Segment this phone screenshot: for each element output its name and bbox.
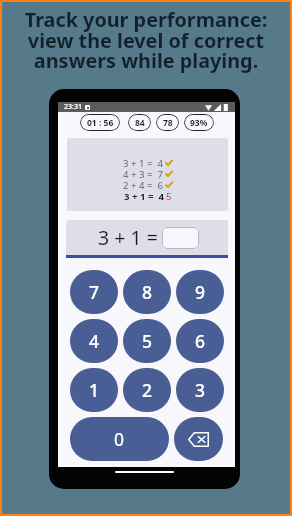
staticText: 3 + 1 = 4 [124,190,164,201]
button[interactable]: 3 + 1 = [66,220,228,255]
button[interactable]: 84 [128,114,151,131]
staticText: 78 [163,117,173,129]
staticText: 3 + 1 = [98,224,158,251]
staticText: 6 [195,329,206,353]
staticText: 0 [114,427,125,451]
button[interactable]: 9 [176,270,224,314]
staticText: 2 [142,378,153,402]
staticText: 01 : 56 [87,117,114,129]
button[interactable]: Backspace [174,417,223,461]
button[interactable]: 1 [70,368,118,412]
staticText: 2 + 4 = 6 [123,179,163,190]
button[interactable]: 7 [70,270,118,314]
button[interactable]: 0 [70,417,169,461]
staticText: 23:31 [64,102,82,112]
staticText: 84 [135,117,145,129]
button[interactable]: 2 [123,368,171,412]
button[interactable]: 93% [184,114,214,131]
button[interactable]: 01 : 56 [80,114,120,131]
staticText: 7 [89,280,100,304]
staticText: Track your performance: view the level o… [2,6,290,74]
button[interactable]: 8 [123,270,171,314]
button[interactable]: 3 [176,368,224,412]
staticText: 8 [142,280,153,304]
staticText: 3 [195,378,206,402]
button[interactable]: 4 [70,319,118,363]
staticText: 1 [89,378,100,402]
staticText: 4 [89,329,100,353]
staticText: 5 [166,190,172,201]
button[interactable]: 5 [123,319,171,363]
button[interactable]: 78 [156,114,179,131]
staticText: 5 [142,329,153,353]
staticText: 3 + 1 = 4 [123,157,163,168]
staticText: 9 [195,280,206,304]
staticText: 4 + 3 = 7 [123,168,163,179]
button[interactable]: 6 [176,319,224,363]
staticText: 93% [190,117,208,129]
